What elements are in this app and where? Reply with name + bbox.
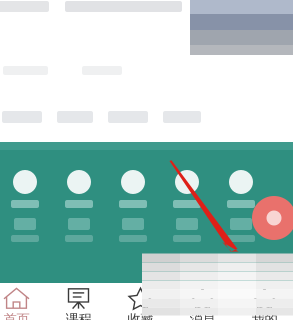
button[interactable]: Quick action xyxy=(0,170,52,208)
button[interactable]: Quick action xyxy=(106,170,160,208)
button[interactable]: Article photo xyxy=(190,0,293,55)
button[interactable]: 收藏 xyxy=(109,279,171,320)
staticText: 消息 xyxy=(189,311,215,320)
staticText: 收藏 xyxy=(127,311,153,320)
staticText: 我的 xyxy=(251,311,277,320)
button[interactable]: Quick action xyxy=(52,170,106,208)
staticText: 首页 xyxy=(3,311,29,320)
button[interactable]: Quick action xyxy=(106,218,160,242)
button[interactable]: Quick action xyxy=(214,170,268,208)
button[interactable]: Quick action xyxy=(160,218,214,242)
button[interactable]: Quick action xyxy=(0,218,52,242)
staticText: 课程 xyxy=(65,311,91,320)
button[interactable]: 课程 xyxy=(47,279,109,320)
button[interactable]: 我的 xyxy=(233,279,295,320)
button[interactable]: 首页 xyxy=(0,279,47,320)
button[interactable]: Quick action xyxy=(214,218,268,242)
button[interactable]: Quick action xyxy=(52,218,106,242)
button[interactable]: Compose xyxy=(252,196,296,240)
button[interactable] xyxy=(0,0,293,12)
button[interactable]: 消息 xyxy=(171,279,233,320)
button[interactable]: Quick action xyxy=(160,170,214,208)
